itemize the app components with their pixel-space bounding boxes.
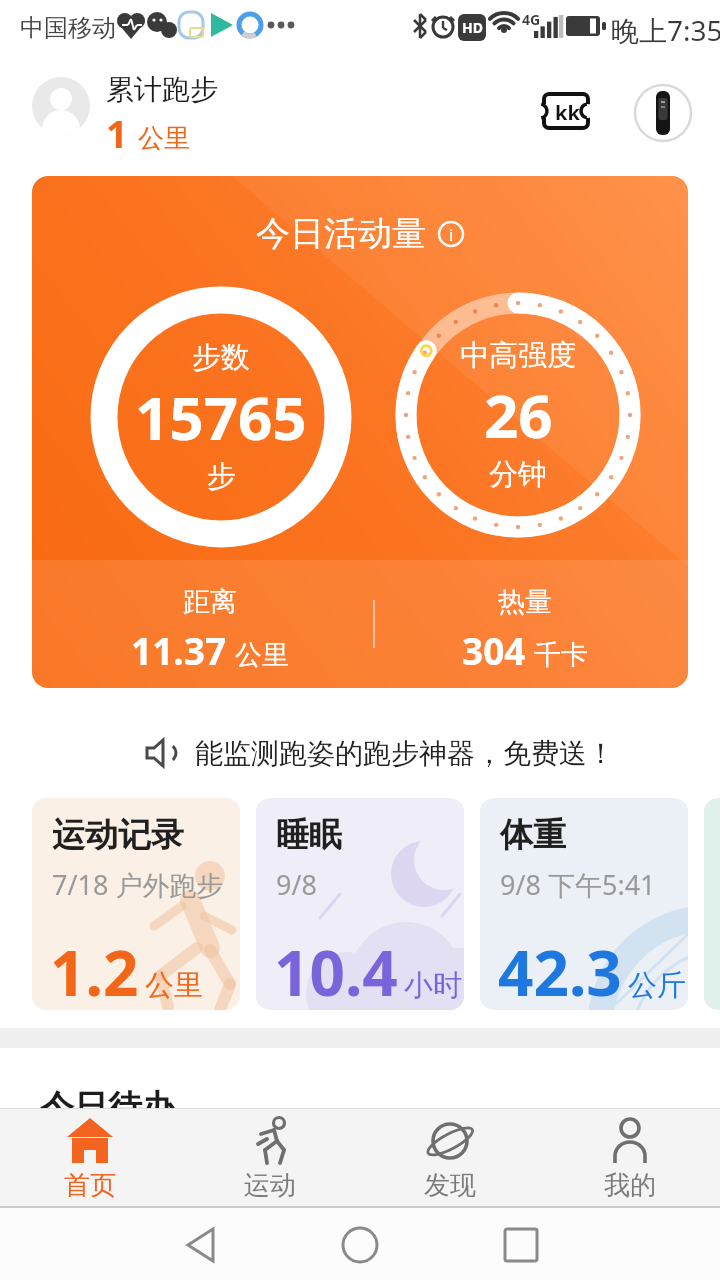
staticText: 我的 xyxy=(604,1169,656,1202)
staticText: 9/8 xyxy=(276,866,317,903)
staticText: 睡眠 xyxy=(276,814,342,856)
staticText: 1 xyxy=(106,107,128,159)
staticText: 9/8 下午5:41 xyxy=(500,866,656,903)
staticText: 运动记录 xyxy=(52,814,184,856)
staticText: 公里 xyxy=(145,967,203,1004)
staticText: 公里 xyxy=(235,638,289,672)
staticText: 11.37 xyxy=(131,625,227,675)
button[interactable]: 睡眠 xyxy=(256,798,464,1010)
staticText: 体重 xyxy=(500,814,566,856)
staticText: 26 xyxy=(484,374,553,456)
button[interactable]: 发现 xyxy=(390,1117,510,1205)
staticText: kk xyxy=(555,99,580,126)
staticText: 发现 xyxy=(424,1169,476,1202)
staticText: 分钟 xyxy=(489,456,547,493)
button[interactable] xyxy=(160,1208,260,1280)
staticText: 步数 xyxy=(192,339,250,376)
button[interactable] xyxy=(634,84,692,142)
staticText: 热量 xyxy=(498,585,552,619)
staticText: 今日待办 xyxy=(40,1086,176,1129)
staticText: 4G xyxy=(522,10,541,29)
staticText: 42.3 xyxy=(498,930,622,1010)
staticText: 304 xyxy=(462,625,526,675)
staticText: 累计跑步 xyxy=(106,72,218,107)
button[interactable] xyxy=(32,77,90,135)
staticText: 步 xyxy=(207,458,236,495)
staticText: 今日活动量 xyxy=(256,212,426,255)
staticText: 千卡 xyxy=(534,638,588,672)
staticText: 晚上7:35 xyxy=(611,11,720,49)
button[interactable]: 首页 xyxy=(30,1117,150,1205)
staticText: 小时 xyxy=(404,967,462,1004)
button[interactable] xyxy=(310,1208,410,1280)
button[interactable]: 运动 xyxy=(210,1117,330,1205)
button[interactable]: 体重 xyxy=(480,798,688,1010)
button[interactable]: kk xyxy=(542,92,592,132)
staticText: 中国移动 xyxy=(20,13,116,43)
staticText: 距离 xyxy=(183,585,237,619)
staticText: 1.2 xyxy=(50,930,139,1010)
button[interactable]: 能监测跑姿的跑步神器，免费送！ xyxy=(0,722,720,784)
staticText: 中高强度 xyxy=(460,337,576,374)
staticText: HD xyxy=(462,18,483,37)
staticText: 公里 xyxy=(138,122,190,155)
staticText: 能监测跑姿的跑步神器，免费送！ xyxy=(195,736,615,771)
staticText: i xyxy=(449,223,454,246)
staticText: 10.4 xyxy=(274,930,398,1010)
staticText: 首页 xyxy=(64,1169,116,1202)
staticText: 15765 xyxy=(135,376,307,458)
button[interactable]: 运动记录 xyxy=(32,798,240,1010)
staticText: 公斤 xyxy=(628,967,686,1004)
staticText: 7/18 户外跑步 xyxy=(52,866,224,903)
staticText: 运动 xyxy=(244,1169,296,1202)
button[interactable] xyxy=(460,1208,560,1280)
button[interactable]: 我的 xyxy=(570,1117,690,1205)
button[interactable]: 今日活动量 xyxy=(32,176,688,688)
